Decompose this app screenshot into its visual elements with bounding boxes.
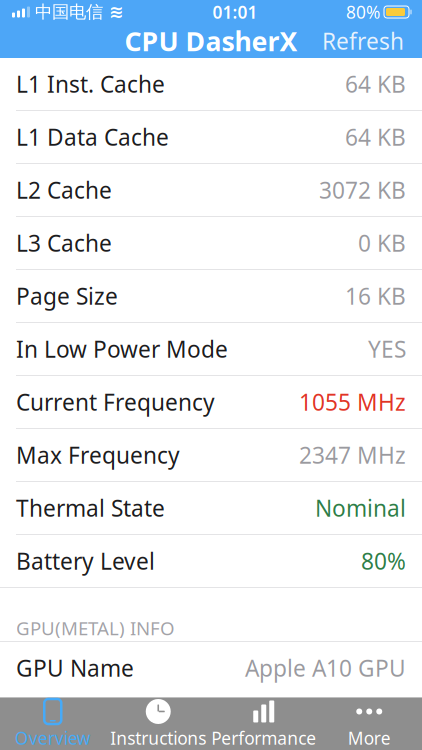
- button[interactable]: Performance: [211, 698, 316, 750]
- button[interactable]: L3 Cache: [0, 217, 422, 270]
- staticText: Performance: [211, 726, 316, 749]
- staticText: In Low Power Mode: [16, 334, 228, 364]
- staticText: 80%: [361, 546, 406, 576]
- button[interactable]: More: [316, 698, 422, 750]
- staticText: Thermal State: [16, 493, 165, 523]
- staticText: More: [348, 726, 391, 749]
- staticText: Nominal: [315, 493, 406, 523]
- staticText: Battery Level: [16, 546, 155, 576]
- button[interactable]: Instructions: [105, 698, 211, 750]
- staticText: 01:01: [212, 0, 257, 23]
- staticText: GPU(METAL) INFO: [16, 616, 175, 640]
- staticText: ≋: [109, 2, 124, 22]
- button[interactable]: GPU Name: [0, 642, 422, 694]
- staticText: L2 Cache: [16, 175, 112, 205]
- button[interactable]: In Low Power Mode: [0, 323, 422, 376]
- staticText: L3 Cache: [16, 228, 112, 258]
- staticText: Overview: [15, 726, 91, 749]
- button[interactable]: L2 Cache: [0, 164, 422, 217]
- staticText: Instructions: [110, 726, 206, 749]
- staticText: Page Size: [16, 281, 118, 311]
- staticText: GPU Name: [16, 653, 134, 683]
- staticText: 16 KB: [345, 281, 406, 311]
- staticText: 3072 KB: [319, 175, 406, 205]
- staticText: L1 Inst. Cache: [16, 69, 165, 99]
- button[interactable]: Page Size: [0, 270, 422, 323]
- staticText: Refresh: [322, 26, 404, 56]
- staticText: 1055 MHz: [299, 387, 406, 417]
- button[interactable]: Max Frequency: [0, 429, 422, 482]
- staticText: 64 KB: [345, 69, 406, 99]
- staticText: CPU DasherX: [124, 23, 297, 59]
- staticText: Current Frequency: [16, 387, 215, 417]
- staticText: Max Frequency: [16, 440, 180, 470]
- staticText: 64 KB: [345, 122, 406, 152]
- button[interactable]: L1 Data Cache: [0, 111, 422, 164]
- staticText: L1 Data Cache: [16, 122, 169, 152]
- button[interactable]: Battery Level: [0, 535, 422, 588]
- button[interactable]: Current Frequency: [0, 376, 422, 429]
- staticText: Apple A10 GPU: [245, 653, 406, 683]
- button[interactable]: Overview: [0, 698, 105, 750]
- staticText: 2347 MHz: [299, 440, 406, 470]
- staticText: YES: [368, 334, 406, 364]
- button[interactable]: Thermal State: [0, 482, 422, 535]
- staticText: 0 KB: [358, 228, 406, 258]
- staticText: 80%: [346, 0, 380, 23]
- button[interactable]: L1 Inst. Cache: [0, 58, 422, 111]
- staticText: 中国电信: [35, 1, 103, 23]
- button[interactable]: Refresh: [310, 20, 416, 62]
